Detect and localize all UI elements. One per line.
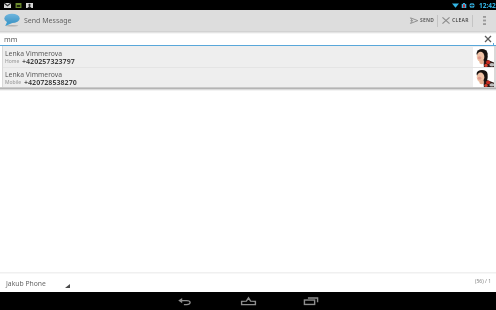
button[interactable]: Send Message <box>0 13 72 28</box>
staticText: CLEAR <box>452 17 469 24</box>
button[interactable]: SEND <box>407 10 437 31</box>
button[interactable]: More options <box>473 10 496 31</box>
staticText: Lenka Vimmerova <box>5 49 63 58</box>
button[interactable]: Lenka Vimmerova <box>3 68 494 87</box>
staticText: Jakub Phone <box>6 279 46 288</box>
staticText: +420728538270 <box>24 77 77 87</box>
staticText: +420257323797 <box>22 56 75 66</box>
button[interactable]: Back <box>165 292 205 310</box>
staticText: Home <box>5 58 20 65</box>
staticText: Send Message <box>24 16 72 26</box>
button[interactable]: Clear text <box>483 34 493 44</box>
staticText: mm <box>4 34 18 44</box>
button[interactable]: Lenka Vimmerova <box>3 46 494 67</box>
button[interactable]: Home <box>228 292 268 310</box>
staticText: Lenka Vimmerova <box>5 70 63 79</box>
staticText: (56) / 1 <box>475 278 492 285</box>
staticText: SEND <box>420 17 435 24</box>
button[interactable]: Jakub Phone <box>0 273 72 293</box>
button[interactable]: CLEAR <box>438 10 472 31</box>
button[interactable]: Recent apps <box>291 292 331 310</box>
staticText: 12:42 <box>479 1 496 10</box>
staticText: Mobile <box>5 79 22 86</box>
